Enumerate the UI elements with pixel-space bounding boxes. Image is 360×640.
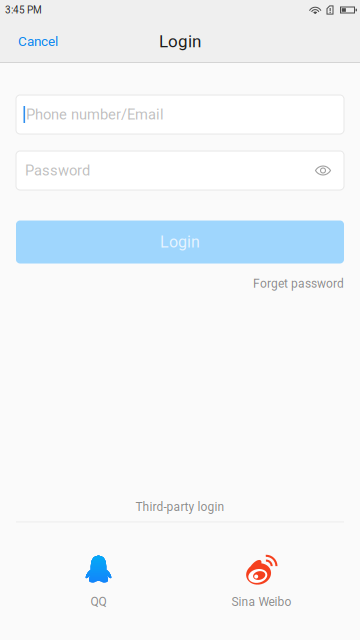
button[interactable]: Show password: [310, 157, 336, 183]
staticText: 3:45 PM: [5, 4, 42, 16]
staticText: Login: [159, 31, 201, 51]
staticText: Login: [160, 233, 200, 251]
button[interactable]: QQ: [17, 555, 180, 609]
staticText: QQ: [90, 595, 106, 609]
staticText: Third-party login: [135, 500, 224, 514]
staticText: Phone number/Email: [26, 106, 164, 123]
staticText: Cancel: [18, 34, 58, 49]
button[interactable]: Login: [16, 220, 344, 263]
staticText: Password: [25, 162, 90, 179]
button[interactable]: Forget password: [253, 276, 344, 291]
button[interactable]: Cancel: [0, 20, 70, 63]
button[interactable]: Sina Weibo: [180, 555, 343, 609]
staticText: Sina Weibo: [231, 595, 291, 609]
staticText: Forget password: [253, 276, 344, 291]
